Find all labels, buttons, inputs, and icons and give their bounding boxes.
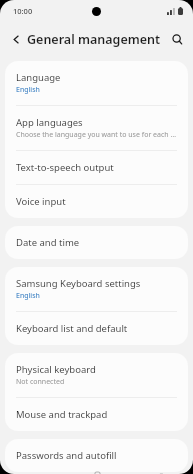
staticText: App languages [16,116,83,129]
button[interactable]: Voice input [5,185,188,218]
button[interactable]: Search [166,28,188,50]
staticText: Language [16,71,61,84]
staticText: Date and time [16,236,80,249]
staticText: English [16,85,40,95]
button[interactable]: Language [5,61,188,105]
button[interactable]: App languages [5,106,188,150]
staticText: Voice input [16,195,66,208]
staticText: 10:00 [13,6,33,16]
staticText: Physical keyboard [16,363,96,376]
staticText: Mouse and trackpad [16,408,108,421]
staticText: Text-to-speech output [16,161,114,174]
button[interactable]: Passwords and autofill [5,439,188,472]
staticText: Samsung Keyboard settings [16,277,141,290]
staticText: General management [27,31,161,48]
button[interactable]: Mouse and trackpad [5,398,188,431]
button[interactable]: Physical keyboard [5,353,188,397]
staticText: Not connected [16,377,65,387]
button[interactable]: Keyboard list and default [5,312,188,345]
button[interactable]: Navigate up [6,29,26,49]
staticText: Passwords and autofill [16,449,117,462]
button[interactable]: Samsung Keyboard settings [5,267,188,311]
staticText: Keyboard list and default [16,322,128,335]
button[interactable]: Date and time [5,226,188,259]
staticText: English [16,291,40,301]
button[interactable]: Text-to-speech output [5,151,188,184]
staticText: Choose the language you want to use for … [16,130,177,140]
